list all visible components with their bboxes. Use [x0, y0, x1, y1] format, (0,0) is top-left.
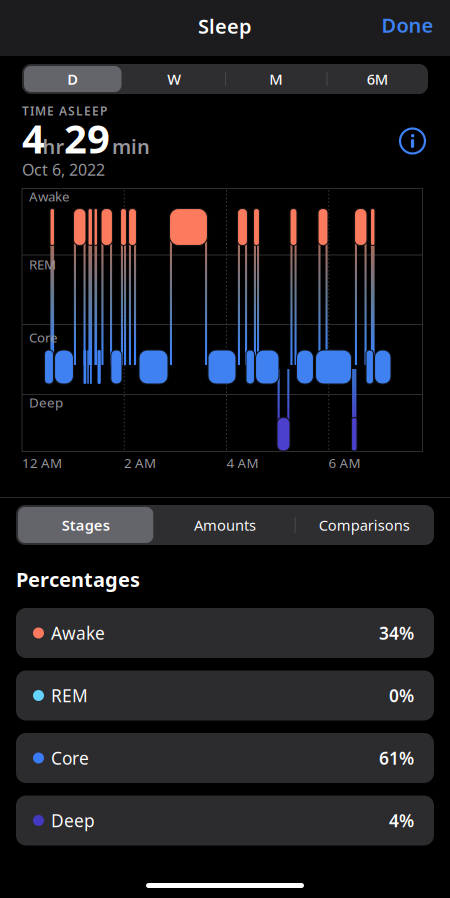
staticText: Oct 6, 2022	[22, 159, 105, 180]
staticText: 0%	[389, 684, 414, 707]
staticText: min	[112, 133, 150, 160]
button[interactable]: Done	[381, 12, 433, 38]
staticText: W	[167, 69, 181, 89]
button[interactable]: D	[22, 64, 123, 94]
staticText: 4	[22, 111, 45, 165]
staticText: Percentages	[16, 566, 140, 593]
staticText: Deep	[51, 809, 95, 832]
button[interactable]: Stages	[16, 505, 155, 545]
staticText: hr	[42, 133, 64, 160]
staticText: 2 AM	[124, 454, 156, 472]
staticText: Awake	[29, 187, 70, 205]
staticText: Comparisons	[319, 515, 410, 535]
staticText: 34%	[379, 621, 414, 644]
staticText: Core	[51, 746, 89, 769]
button[interactable]: 6M	[326, 64, 428, 94]
staticText: REM	[29, 255, 56, 273]
button[interactable]	[400, 128, 425, 153]
staticText: TIME ASLEEP	[22, 103, 107, 119]
button[interactable]: Comparisons	[295, 505, 434, 545]
staticText: Sleep	[198, 13, 252, 39]
staticText: M	[269, 69, 282, 89]
staticText: REM	[51, 684, 88, 707]
staticText: Deep	[29, 393, 63, 411]
staticText: 6 AM	[328, 454, 360, 472]
staticText: Stages	[62, 515, 110, 535]
staticText: 6M	[367, 69, 388, 89]
button[interactable]: W	[123, 64, 225, 94]
staticText: 4%	[389, 809, 414, 832]
staticText: Core	[29, 328, 58, 346]
button[interactable]: Amounts	[155, 505, 295, 545]
staticText: 29	[64, 111, 110, 165]
staticText: 4 AM	[226, 454, 258, 472]
staticText: 61%	[379, 746, 414, 769]
staticText: D	[67, 69, 78, 89]
staticText: Amounts	[194, 515, 256, 535]
staticText: Awake	[51, 621, 105, 644]
staticText: 12 AM	[22, 454, 62, 472]
button[interactable]: M	[225, 64, 326, 94]
staticText: Done	[381, 12, 433, 38]
